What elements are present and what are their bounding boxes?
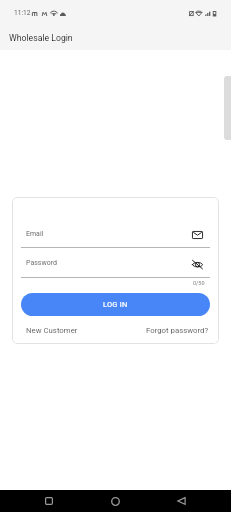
button[interactable]: Show password xyxy=(189,256,205,272)
button[interactable]: LOG IN xyxy=(21,293,210,316)
button[interactable]: New Customer xyxy=(26,326,78,335)
staticText: Password xyxy=(26,259,57,267)
staticText: Email xyxy=(26,230,44,238)
button[interactable]: Recents xyxy=(33,490,65,512)
button[interactable]: Email xyxy=(189,227,205,243)
staticText: 11:12 xyxy=(14,9,31,17)
button[interactable]: Forgot password? xyxy=(146,326,209,335)
staticText: LOG IN xyxy=(103,300,128,309)
button[interactable]: Home xyxy=(99,490,131,512)
staticText: 0/50 xyxy=(193,280,205,286)
staticText: Wholesale Login xyxy=(9,33,73,43)
button[interactable]: Back xyxy=(165,490,197,512)
